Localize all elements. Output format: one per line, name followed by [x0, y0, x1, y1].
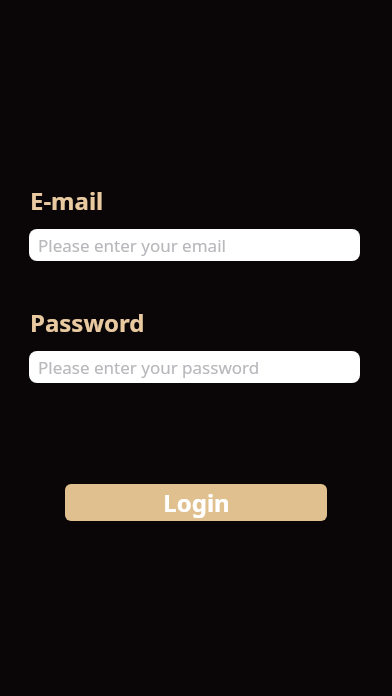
staticText: Please enter your password — [38, 356, 260, 379]
staticText: Password — [30, 306, 145, 339]
staticText: Login — [163, 486, 230, 519]
button[interactable]: E-mail input field — [29, 229, 360, 261]
staticText: E-mail — [30, 184, 104, 217]
button[interactable]: Password input field — [29, 351, 360, 383]
button[interactable]: Login — [65, 484, 327, 521]
staticText: Please enter your email — [38, 234, 226, 257]
